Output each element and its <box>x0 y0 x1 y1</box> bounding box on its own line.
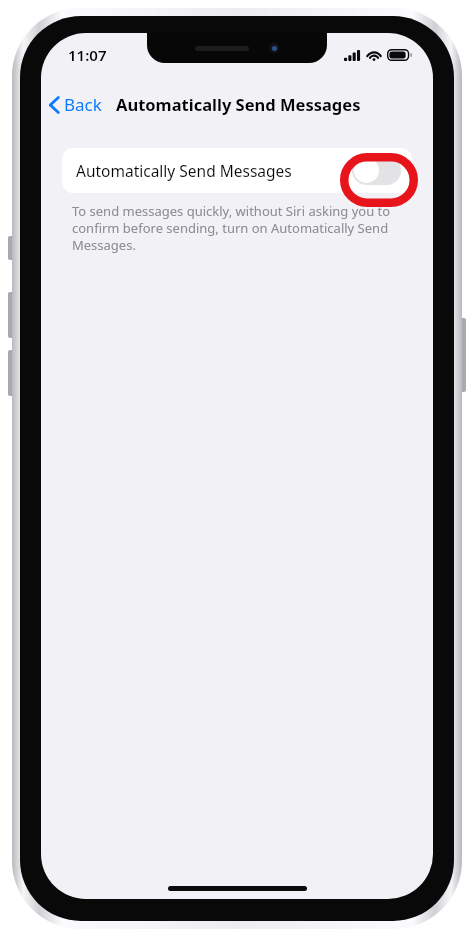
staticText: 11:07 <box>68 45 107 65</box>
staticText: Back <box>64 93 102 116</box>
staticText: Automatically Send Messages <box>116 93 361 115</box>
button[interactable]: Automatically Send Messages <box>62 148 412 193</box>
button[interactable]: Back <box>41 88 106 121</box>
staticText: To send messages quickly, without Siri a… <box>72 202 401 254</box>
button[interactable]: Automatically Send Messages, off <box>352 156 401 185</box>
staticText: Automatically Send Messages <box>76 160 292 181</box>
